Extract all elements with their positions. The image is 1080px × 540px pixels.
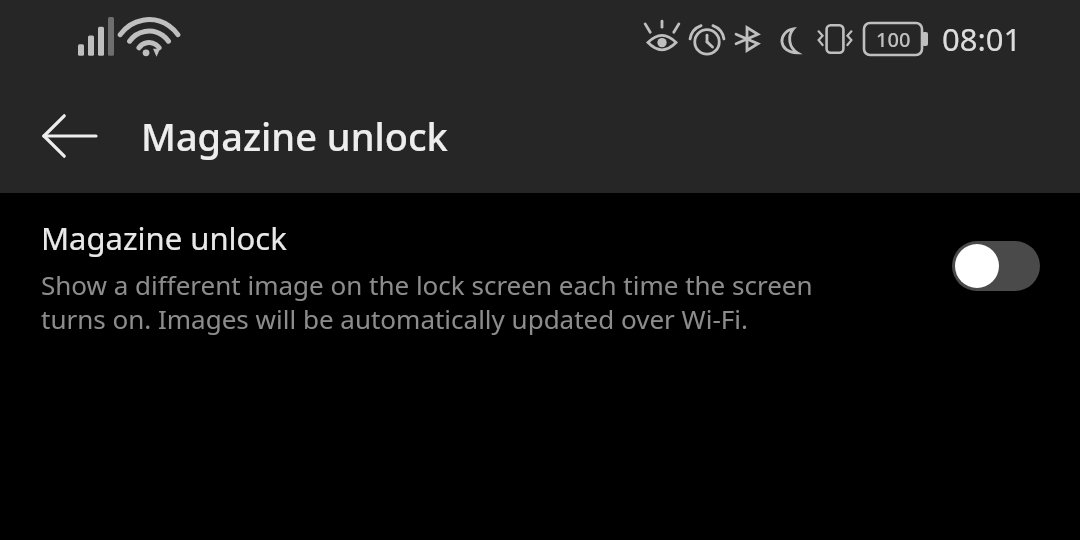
- staticText: Magazine unlock: [141, 110, 448, 162]
- button[interactable]: Magazine unlock: [0, 193, 1080, 355]
- button[interactable]: Back: [28, 94, 112, 178]
- button[interactable]: Magazine unlock toggle, off: [952, 241, 1040, 291]
- staticText: Show a different image on the lock scree…: [41, 267, 882, 337]
- staticText: 08:01: [942, 18, 1022, 60]
- staticText: Magazine unlock: [41, 217, 287, 259]
- staticText: 100: [876, 26, 911, 53]
